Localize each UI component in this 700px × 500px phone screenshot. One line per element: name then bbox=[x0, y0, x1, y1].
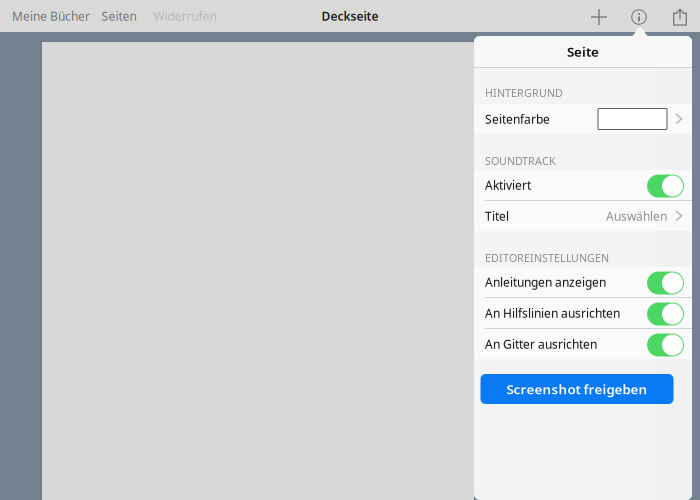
staticText: An Gitter ausrichten bbox=[485, 336, 597, 352]
staticText: Seite bbox=[567, 43, 599, 60]
button[interactable]: Informationen bbox=[620, 1, 658, 33]
button[interactable]: Meine Bücher bbox=[8, 0, 94, 32]
button[interactable]: Seite hinzufügen bbox=[580, 1, 618, 33]
staticText: Screenshot freigeben bbox=[506, 380, 647, 398]
button[interactable]: Seiten bbox=[93, 0, 145, 32]
staticText: SOUNDTRACK bbox=[485, 154, 556, 168]
button[interactable]: Screenshot freigeben bbox=[480, 374, 673, 404]
button[interactable]: Seitenfarbe bbox=[474, 104, 692, 134]
staticText: EDITOREINSTELLUNGEN bbox=[485, 251, 609, 265]
staticText: Widerrufen bbox=[153, 8, 216, 24]
button[interactable]: Titel bbox=[474, 201, 692, 231]
staticText: HINTERGRUND bbox=[485, 86, 563, 100]
staticText: Aktiviert bbox=[485, 177, 531, 193]
button[interactable]: Aktiviert bbox=[474, 170, 692, 200]
staticText: Deckseite bbox=[321, 8, 378, 24]
button[interactable]: An Hilfslinien ausrichten bbox=[474, 298, 692, 328]
staticText: Titel bbox=[485, 208, 509, 224]
staticText: Auswählen bbox=[606, 208, 667, 224]
staticText: Anleitungen anzeigen bbox=[485, 274, 606, 290]
button[interactable]: An Gitter ausrichten bbox=[474, 329, 692, 359]
staticText: Meine Bücher bbox=[12, 8, 90, 24]
staticText: An Hilfslinien ausrichten bbox=[485, 305, 620, 321]
staticText: Seiten bbox=[101, 8, 136, 24]
button[interactable]: Anleitungen anzeigen bbox=[474, 267, 692, 297]
button[interactable]: Teilen bbox=[661, 0, 699, 31]
button[interactable]: Widerrufen bbox=[149, 0, 221, 32]
staticText: Seitenfarbe bbox=[485, 111, 550, 127]
